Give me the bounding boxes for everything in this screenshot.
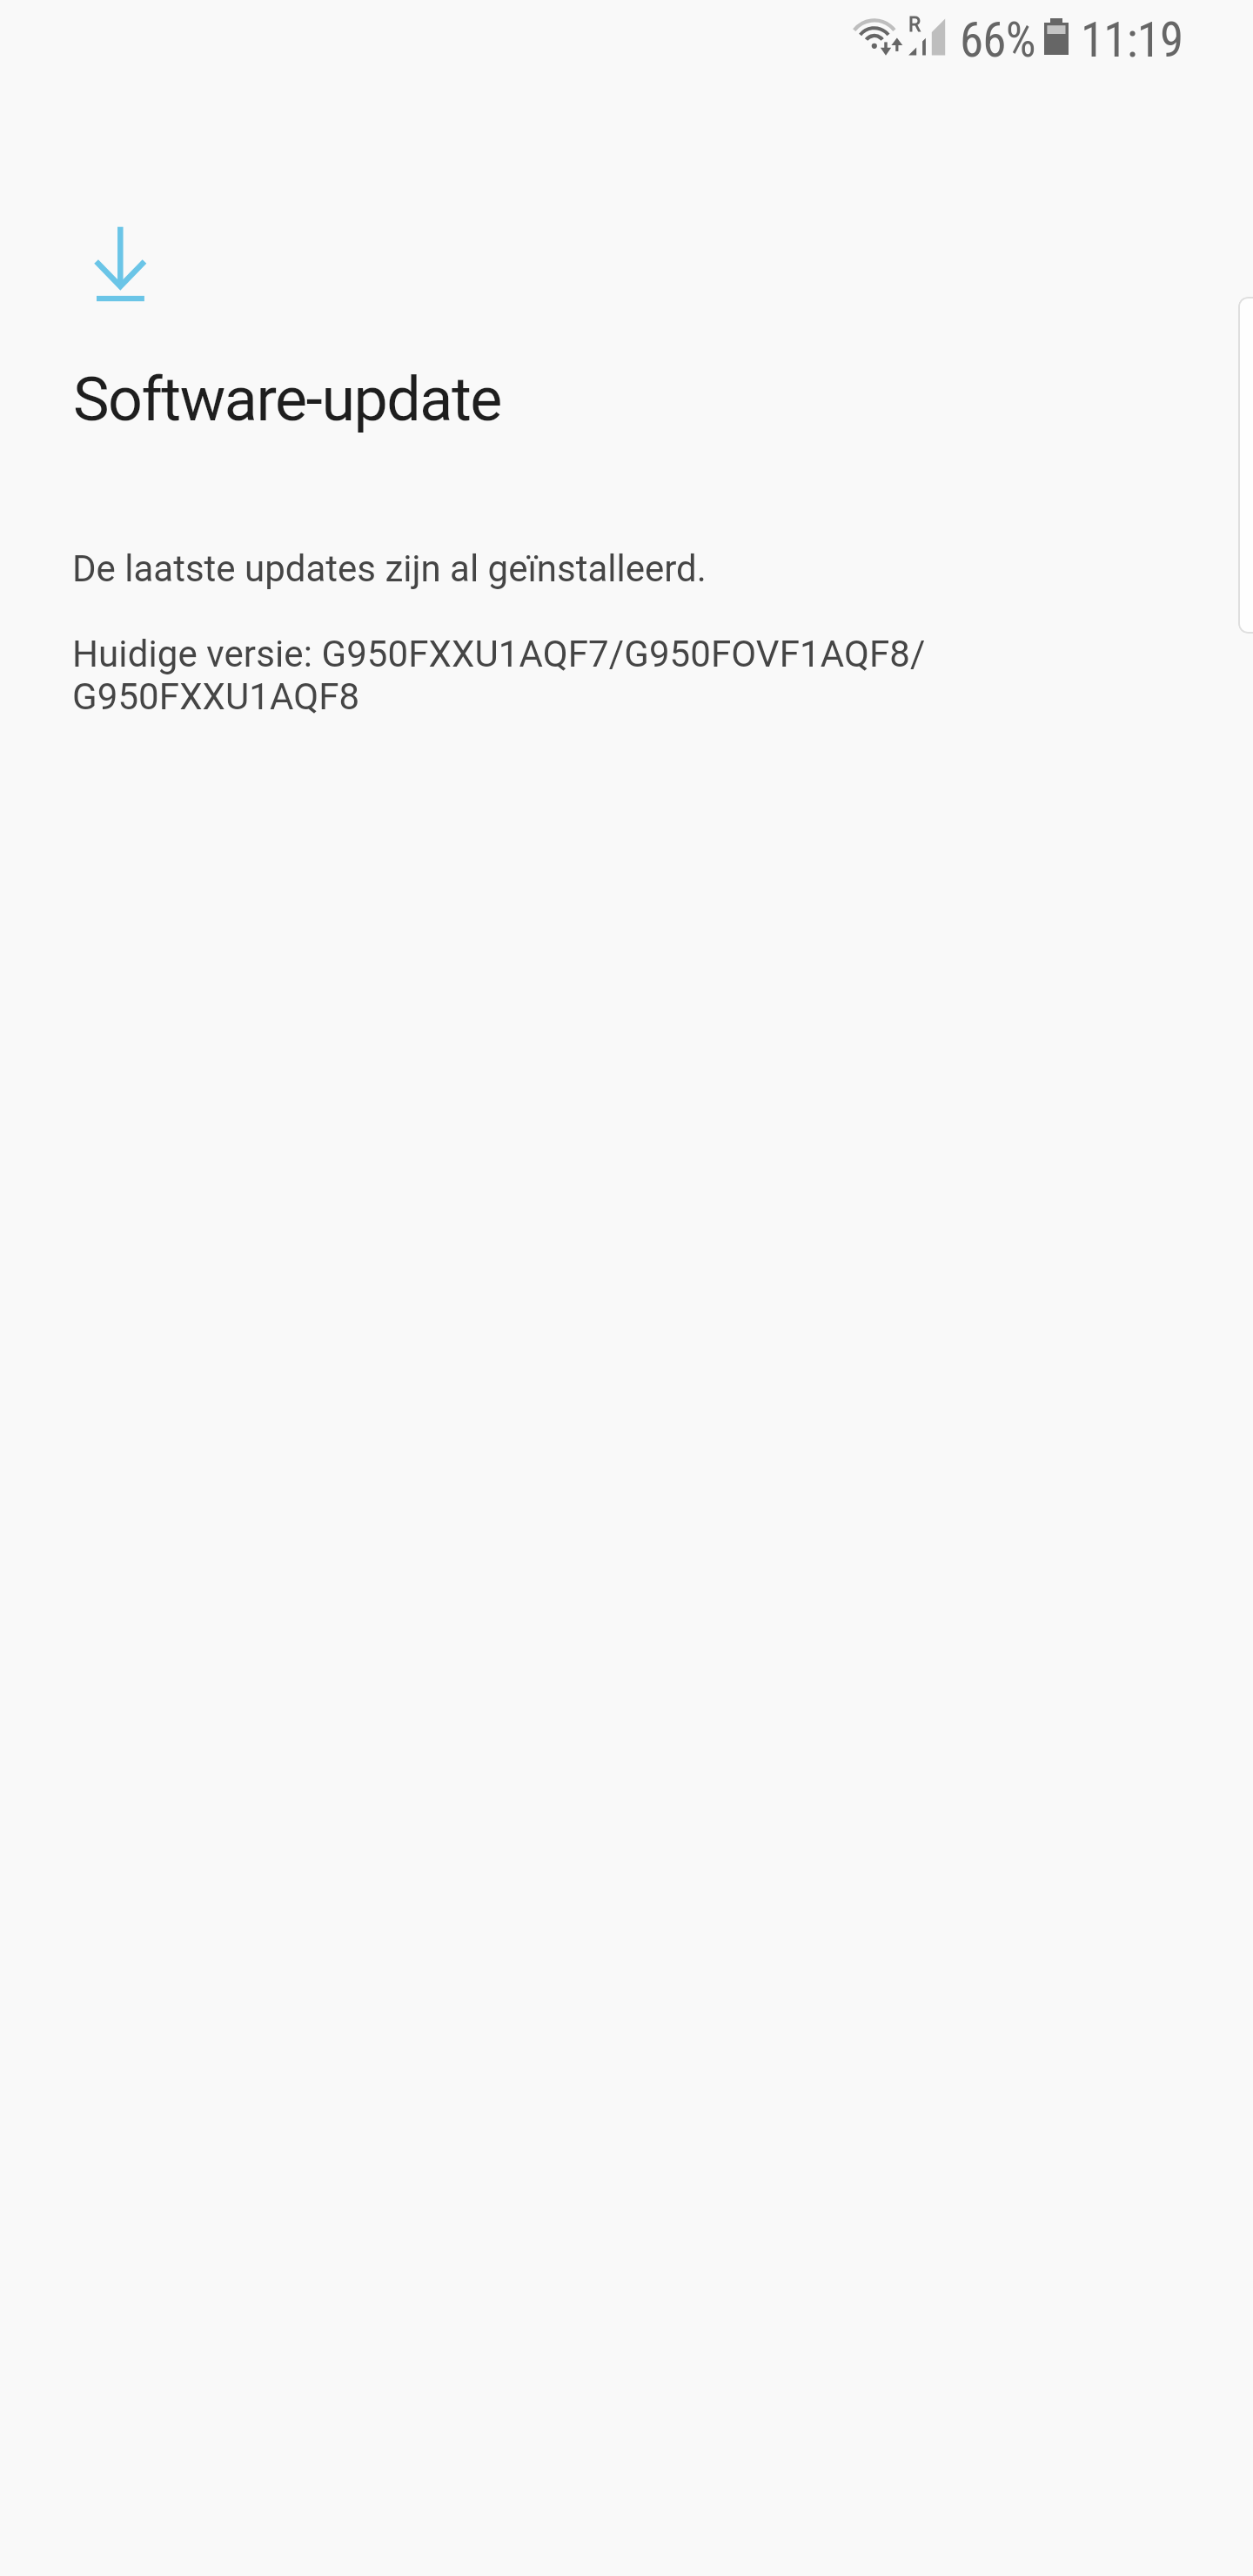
staticText: 66% (960, 12, 1035, 68)
other: Software update (87, 218, 157, 309)
staticText: 11:19 (1081, 12, 1183, 68)
staticText: Huidige versie: G950FXXU1AQF7/G950FOVF1A… (72, 633, 926, 718)
other: Mobile signal (905, 12, 948, 57)
staticText: De laatste updates zijn al geïnstalleerd… (72, 547, 707, 590)
other: Wi-Fi (848, 10, 904, 59)
other: Battery (1044, 18, 1069, 55)
staticText: R (908, 13, 921, 37)
staticText: Software-update (73, 364, 501, 435)
